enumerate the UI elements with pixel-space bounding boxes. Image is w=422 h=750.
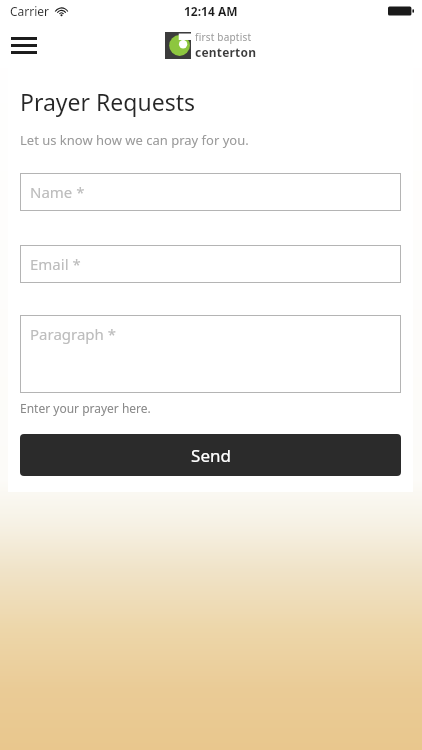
staticText: centerton [195, 44, 257, 60]
button[interactable]: Paragraph * [20, 315, 401, 393]
staticText: Prayer Requests [20, 86, 195, 117]
button[interactable]: Name * [20, 173, 401, 211]
staticText: Send [191, 444, 231, 467]
staticText: Paragraph * [30, 324, 116, 344]
staticText: 12:14 AM [184, 3, 238, 19]
staticText: Email * [30, 254, 81, 274]
button[interactable]: Email * [20, 245, 401, 283]
staticText: first baptist [195, 30, 252, 44]
button[interactable]: Send [20, 434, 401, 476]
staticText: Enter your prayer here. [20, 400, 151, 416]
button[interactable]: Open navigation menu [6, 30, 42, 60]
staticText: Name * [30, 182, 85, 202]
staticText: Let us know how we can pray for you. [20, 131, 249, 149]
staticText: Carrier [10, 3, 50, 19]
